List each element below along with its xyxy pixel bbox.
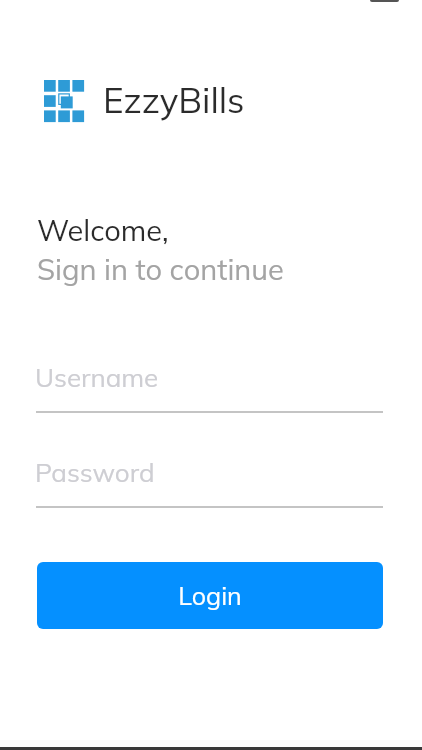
button[interactable]: Password bbox=[35, 456, 381, 506]
staticText: Welcome, bbox=[37, 212, 169, 248]
staticText: Username bbox=[35, 361, 159, 394]
staticText: Sign in to continue bbox=[37, 251, 284, 287]
staticText: Password bbox=[35, 456, 155, 489]
staticText: EzzyBills bbox=[103, 78, 245, 122]
button[interactable]: Login bbox=[37, 562, 383, 629]
staticText: Login bbox=[178, 580, 242, 611]
other: EzzyBills logo bbox=[44, 80, 85, 123]
button[interactable]: Username bbox=[35, 361, 381, 411]
